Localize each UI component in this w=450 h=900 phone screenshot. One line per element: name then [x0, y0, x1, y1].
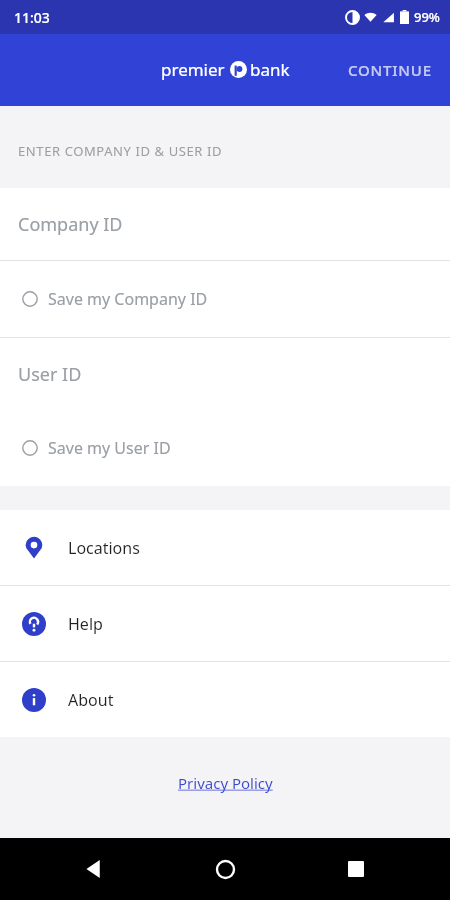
- button[interactable]: User ID: [0, 338, 450, 410]
- staticText: ENTER COMPANY ID & USER ID: [18, 142, 223, 160]
- staticText: CONTINUE: [348, 60, 432, 80]
- button[interactable]: Company ID: [0, 188, 450, 260]
- button[interactable]: Locations: [0, 510, 450, 585]
- staticText: Company ID: [18, 212, 123, 237]
- staticText: Save my Company ID: [48, 288, 208, 310]
- staticText: Privacy Policy: [178, 773, 273, 793]
- button[interactable]: Recent apps: [332, 845, 380, 893]
- staticText: About: [68, 689, 114, 711]
- button[interactable]: Save my User ID: [0, 410, 450, 486]
- staticText: Locations: [68, 537, 140, 559]
- button[interactable]: CONTINUE: [336, 50, 444, 90]
- staticText: Save my User ID: [48, 437, 171, 459]
- staticText: bank: [250, 58, 290, 81]
- button[interactable]: Privacy Policy: [170, 769, 281, 797]
- staticText: 99%: [414, 8, 440, 26]
- button[interactable]: Help: [0, 586, 450, 661]
- staticText: Help: [68, 613, 103, 635]
- button[interactable]: Back: [70, 845, 118, 893]
- button[interactable]: About: [0, 662, 450, 737]
- staticText: premier: [161, 58, 225, 81]
- staticText: User ID: [18, 362, 82, 387]
- staticText: 11:03: [14, 8, 50, 27]
- button[interactable]: Save my Company ID: [0, 261, 450, 337]
- button[interactable]: Home: [201, 845, 249, 893]
